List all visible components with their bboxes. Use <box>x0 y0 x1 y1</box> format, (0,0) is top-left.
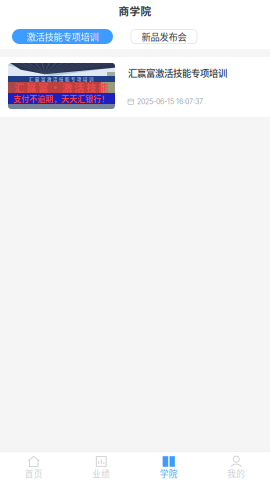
staticText: 汇赢富激活技能专项培训 <box>128 66 227 79</box>
button[interactable]: 汇 赢 富 激 活 技 能 专 项 培 训 <box>0 57 270 117</box>
staticText: 首页 <box>25 467 43 480</box>
button[interactable]: 我的 <box>202 452 270 480</box>
button[interactable]: 激活技能专项培训 <box>12 29 113 44</box>
staticText: 汇 赢 富 激 活 技 能 专 项 培 训 <box>29 76 94 82</box>
staticText: 商学院 <box>118 3 151 18</box>
button[interactable]: 业绩 <box>67 452 135 480</box>
staticText: 新品发布会 <box>141 30 186 43</box>
staticText: 学院 <box>160 467 178 480</box>
staticText: 我的 <box>227 467 245 480</box>
button[interactable]: 学院 <box>135 452 202 480</box>
staticText: 汇 赢 富 · 激 活 技 能 <box>14 80 108 95</box>
staticText: 2025-06-15 16:07:37 <box>137 98 203 106</box>
staticText: 支付不逾期，天天汇银行！ <box>13 93 109 104</box>
staticText: 激活技能专项培训 <box>26 30 98 43</box>
button[interactable]: 新品发布会 <box>131 29 197 43</box>
staticText: 业绩 <box>92 467 110 480</box>
button[interactable]: 首页 <box>0 452 67 480</box>
